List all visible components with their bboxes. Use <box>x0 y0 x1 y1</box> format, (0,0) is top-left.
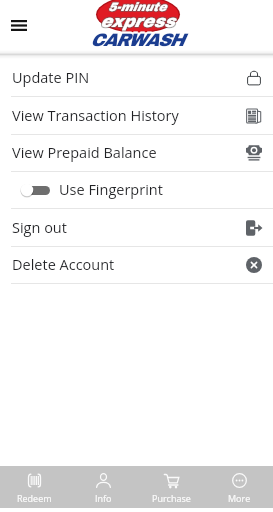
staticText: express <box>99 12 174 30</box>
staticText: 5-minute <box>107 0 166 13</box>
staticText: express <box>101 12 176 30</box>
button[interactable]: Info <box>69 466 137 508</box>
staticText: express <box>99 13 174 31</box>
staticText: View Transaction History <box>12 106 179 126</box>
staticText: 5-minute <box>109 0 168 13</box>
staticText: 5-minute <box>108 1 167 14</box>
staticText: 5-minute <box>109 0 168 12</box>
staticText: CARWASH <box>88 30 181 50</box>
staticText: Use Fingerprint <box>59 180 163 200</box>
button[interactable]: Purchase <box>137 466 205 508</box>
staticText: Info <box>95 492 112 504</box>
staticText: Purchase <box>152 492 191 504</box>
staticText: express <box>100 11 175 29</box>
staticText: Redeem <box>17 492 52 504</box>
button[interactable]: Update PIN <box>0 60 273 96</box>
staticText: express <box>101 13 176 31</box>
button[interactable]: Use Fingerprint <box>0 172 273 208</box>
staticText: Sign out <box>12 218 67 238</box>
button[interactable]: Redeem <box>0 466 69 508</box>
button[interactable]: Delete Account <box>0 247 273 283</box>
staticText: 5-minute <box>108 0 167 12</box>
button[interactable]: View Transaction History <box>0 97 273 134</box>
staticText: 5-minute <box>108 0 167 13</box>
button[interactable]: View Prepaid Balance <box>0 135 273 171</box>
staticText: express <box>101 11 176 29</box>
staticText: express <box>100 12 175 30</box>
staticText: CARWASH <box>89 29 182 49</box>
staticText: CARWASH <box>91 31 184 51</box>
staticText: CARWASH <box>91 29 184 49</box>
button[interactable]: Open navigation menu <box>0 6 37 43</box>
staticText: CARWASH <box>90 30 183 50</box>
staticText: View Prepaid Balance <box>12 143 157 163</box>
button[interactable]: Sign out <box>0 209 273 246</box>
staticText: CARWASH <box>89 31 182 51</box>
staticText: express <box>100 13 175 31</box>
staticText: 5-minute <box>109 1 168 14</box>
staticText: Update PIN <box>12 68 90 88</box>
staticText: CARWASH <box>90 28 183 48</box>
button[interactable]: More <box>205 466 273 508</box>
staticText: Delete Account <box>12 255 115 275</box>
staticText: CARWASH <box>92 30 185 50</box>
staticText: CARWASH <box>90 32 183 52</box>
staticText: More <box>228 492 251 504</box>
staticText: express <box>99 11 174 29</box>
staticText: 5-minute <box>107 0 166 12</box>
staticText: 5-minute <box>107 1 166 14</box>
